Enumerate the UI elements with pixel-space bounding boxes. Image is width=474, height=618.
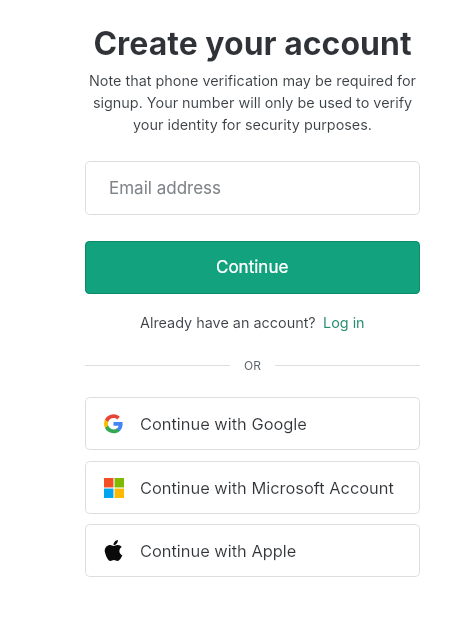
button[interactable]: Google logo: [85, 397, 420, 450]
other: Microsoft logo: [104, 478, 124, 498]
button[interactable]: Log in: [323, 314, 365, 331]
staticText: Email address: [109, 178, 222, 199]
button[interactable]: Microsoft logo: [85, 461, 420, 514]
staticText: Create your account: [93, 24, 412, 63]
staticText: Already have an account?: [140, 314, 316, 331]
staticText: Continue with Google: [140, 414, 307, 434]
other: Apple logo: [103, 540, 124, 561]
staticText: OR: [244, 358, 261, 373]
staticText: Continue: [216, 257, 289, 278]
button[interactable]: Email address: [85, 161, 420, 215]
staticText: Continue with Microsoft Account: [140, 478, 394, 498]
other: Google logo: [104, 414, 123, 433]
button[interactable]: Apple logo: [85, 524, 420, 577]
staticText: Continue with Apple: [140, 541, 297, 561]
button[interactable]: Continue: [85, 241, 420, 294]
staticText: Log in: [323, 314, 365, 331]
staticText: Note that phone verification may be requ…: [85, 72, 420, 133]
